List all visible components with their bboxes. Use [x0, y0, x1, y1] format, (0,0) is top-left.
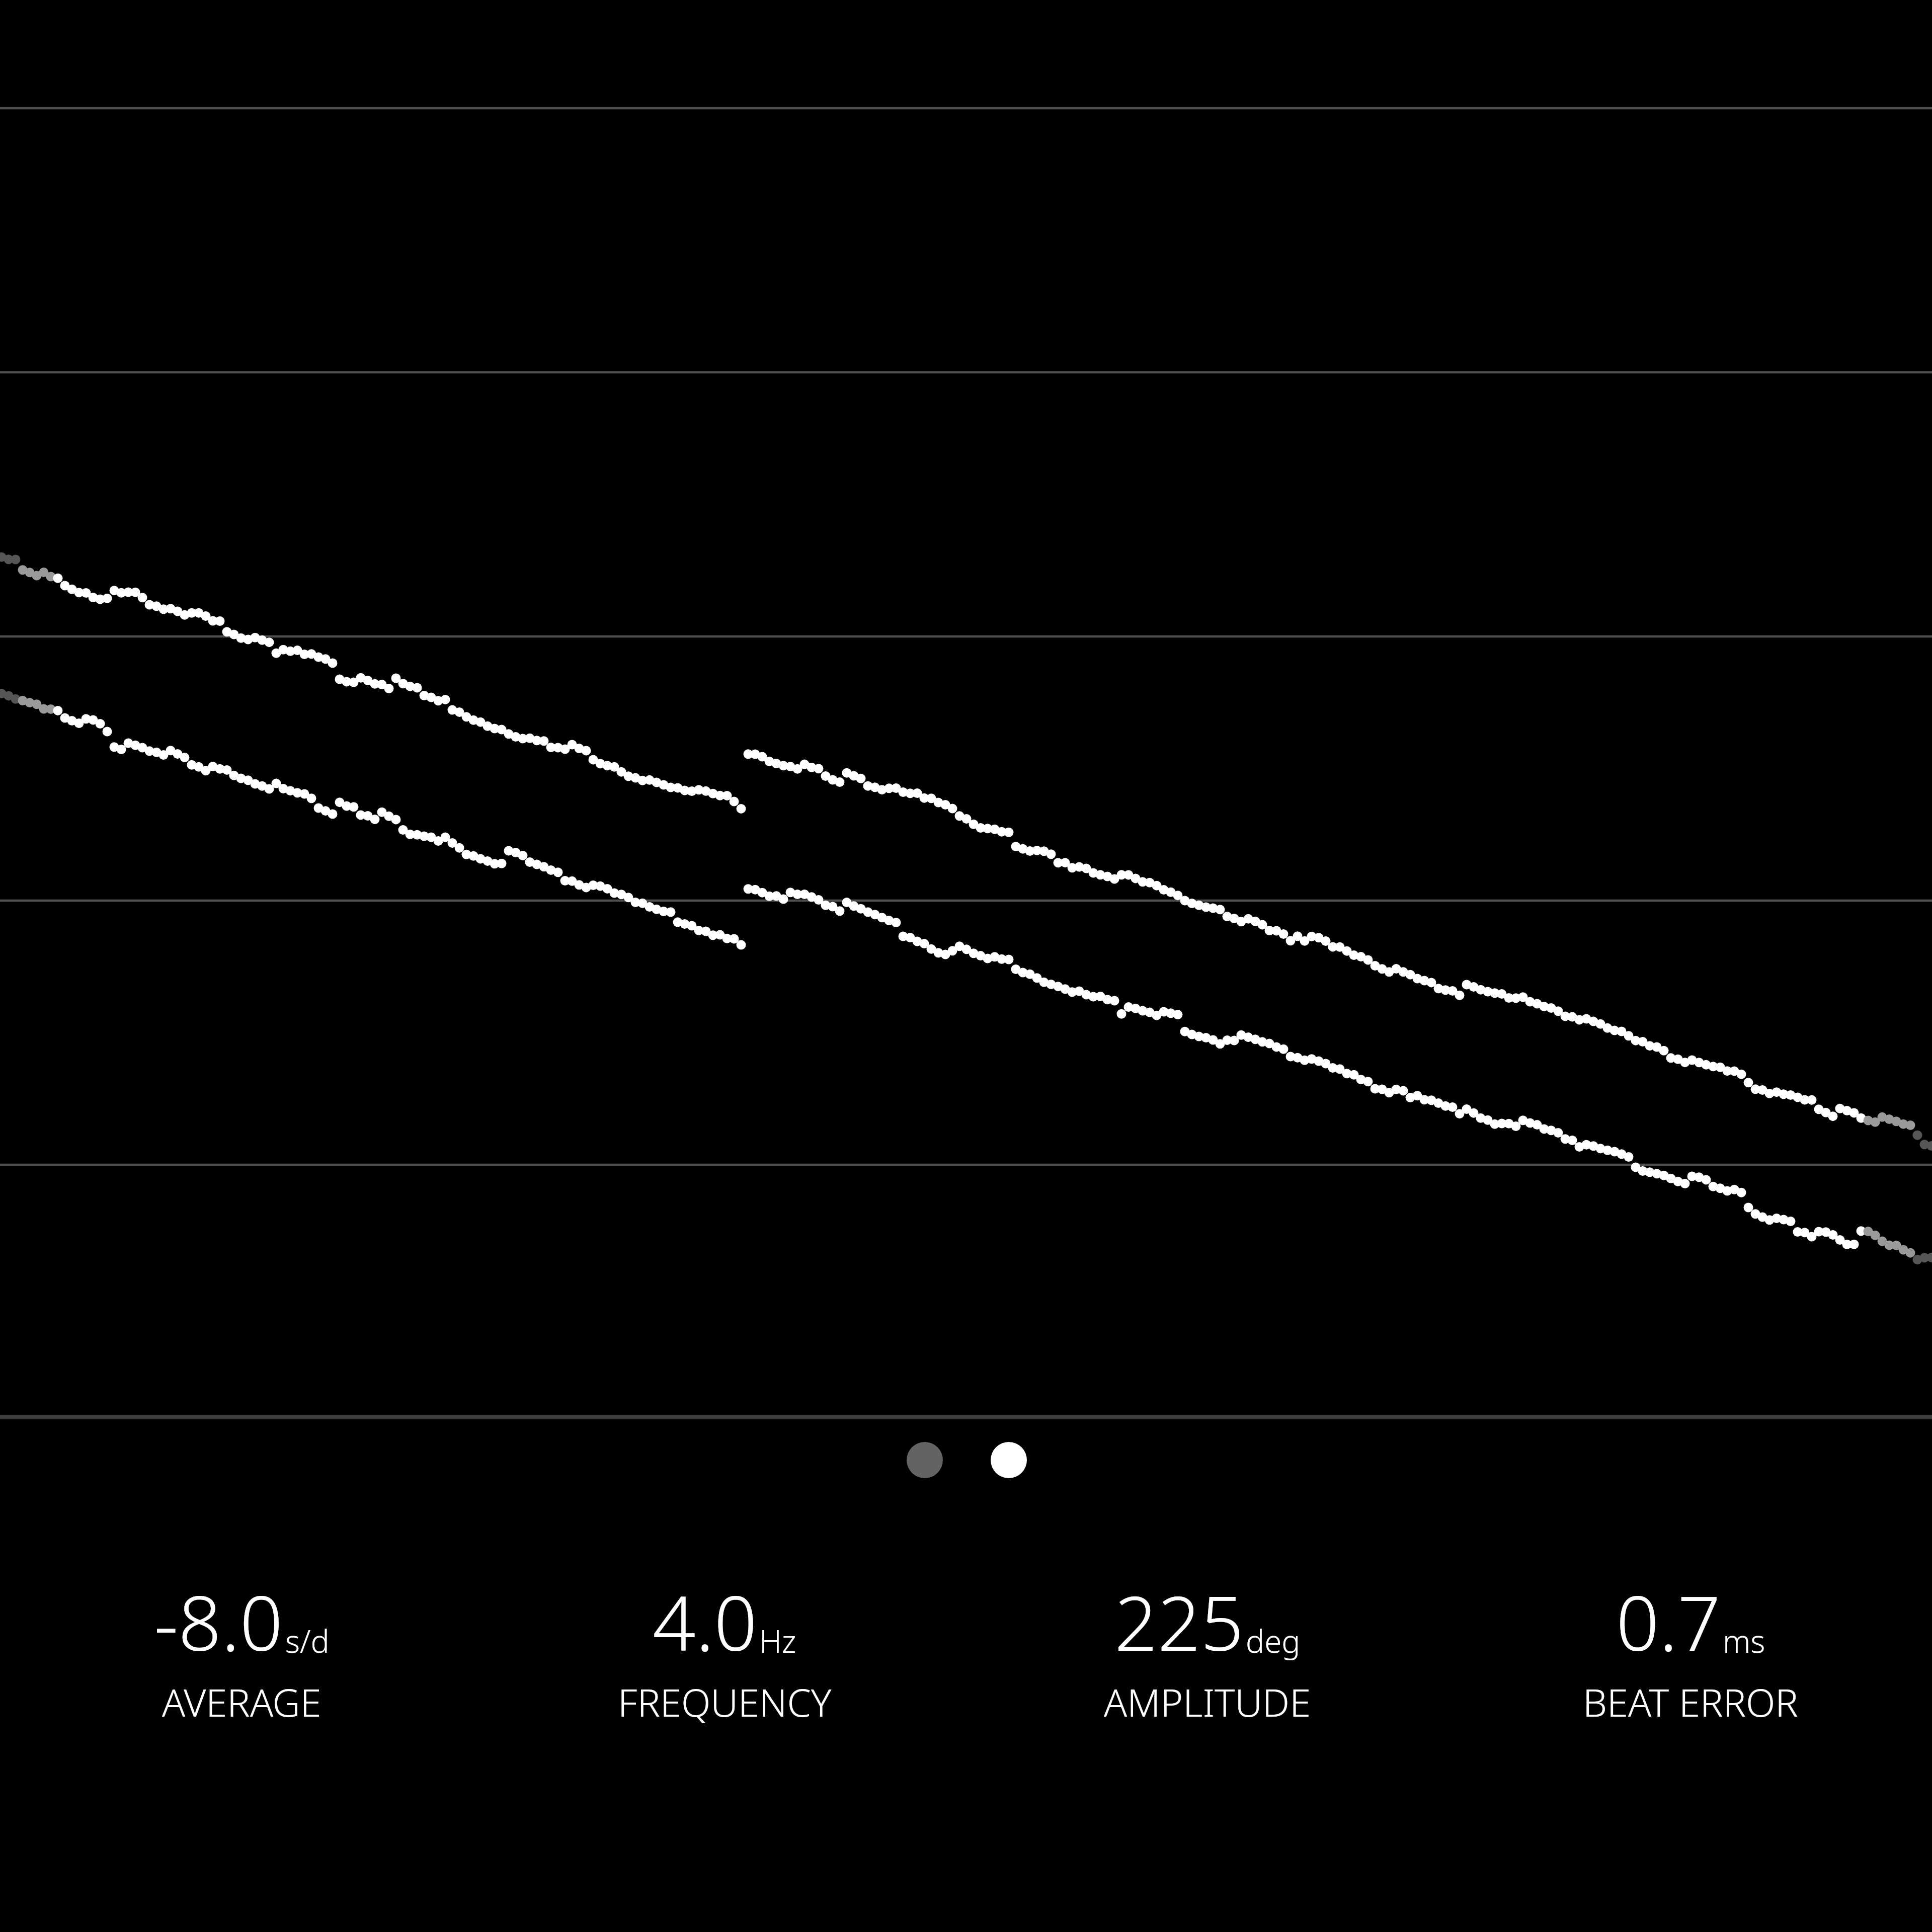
button[interactable]: Page 1	[920, 1467, 966, 1513]
staticText: deg	[1246, 1620, 1301, 1662]
button[interactable]: Page 2	[966, 1467, 1012, 1513]
staticText: s/d	[285, 1620, 330, 1662]
staticText: 0.7	[1616, 1570, 1721, 1673]
staticText: -8.0	[154, 1570, 283, 1673]
button[interactable]: 4.0	[483, 1563, 966, 1932]
staticText: 225	[1114, 1570, 1244, 1673]
button[interactable]: Timing graph	[0, 0, 1932, 1417]
staticText: AVERAGE	[162, 1676, 321, 1728]
staticText: AMPLITUDE	[1104, 1676, 1311, 1728]
staticText: ms	[1723, 1620, 1765, 1662]
staticText: BEAT ERROR	[1583, 1676, 1798, 1728]
staticText: FREQUENCY	[618, 1676, 832, 1728]
button[interactable]: 0.7	[1449, 1563, 1932, 1932]
staticText: 4.0	[653, 1570, 757, 1673]
button[interactable]: 225	[966, 1563, 1449, 1932]
button[interactable]: -8.0	[0, 1563, 483, 1932]
staticText: Hz	[759, 1620, 796, 1662]
